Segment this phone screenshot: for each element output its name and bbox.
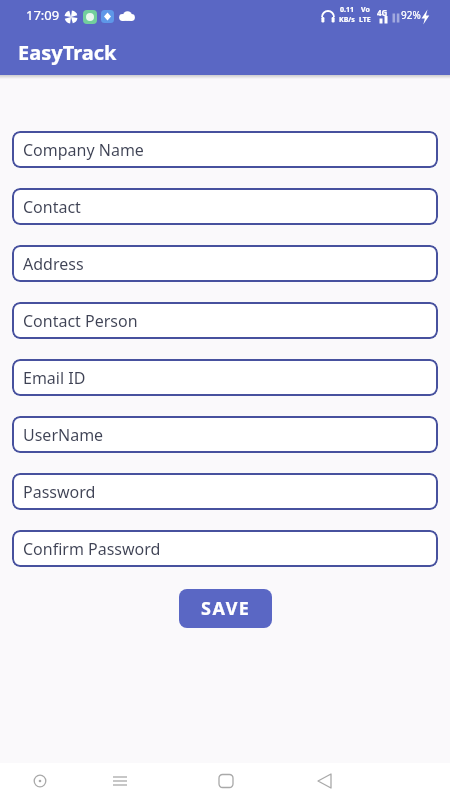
staticText: Password bbox=[23, 481, 96, 503]
staticText: 0.11 bbox=[340, 5, 354, 15]
staticText: UserName bbox=[23, 424, 104, 446]
staticText: LTE bbox=[359, 15, 371, 25]
button[interactable]: Address bbox=[12, 245, 438, 282]
staticText: 17:09 bbox=[26, 6, 60, 24]
staticText: Address bbox=[23, 253, 84, 275]
button[interactable]: Password bbox=[12, 473, 438, 510]
staticText: 4G bbox=[377, 7, 388, 18]
button[interactable]: Company Name bbox=[12, 131, 438, 168]
button[interactable]: Contact bbox=[12, 188, 438, 225]
staticText: Company Name bbox=[23, 139, 144, 161]
button[interactable]: Email ID bbox=[12, 359, 438, 396]
button[interactable]: Confirm Password bbox=[12, 530, 438, 567]
staticText: Vo bbox=[361, 5, 370, 15]
staticText: EasyTrack bbox=[18, 39, 117, 66]
button[interactable] bbox=[112, 763, 224, 800]
staticText: Email ID bbox=[23, 367, 86, 389]
staticText: KB/s bbox=[339, 15, 355, 25]
button[interactable]: Contact Person bbox=[12, 302, 438, 339]
button[interactable]: SAVE bbox=[179, 589, 272, 628]
button[interactable] bbox=[224, 763, 337, 800]
staticText: Confirm Password bbox=[23, 538, 161, 560]
staticText: 92% bbox=[401, 8, 421, 22]
staticText: Contact Person bbox=[23, 310, 138, 332]
button[interactable]: UserName bbox=[12, 416, 438, 453]
staticText: SAVE bbox=[201, 596, 251, 621]
button[interactable] bbox=[0, 763, 112, 800]
staticText: Contact bbox=[23, 196, 81, 218]
